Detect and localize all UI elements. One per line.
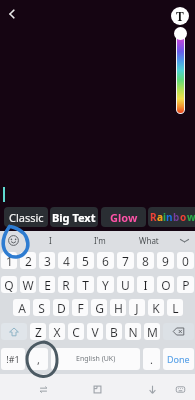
staticText: !#1	[6, 353, 20, 365]
button[interactable]: C	[68, 323, 84, 340]
staticText: B	[110, 324, 118, 340]
staticText: 9	[162, 253, 169, 269]
staticText: R	[62, 277, 70, 293]
staticText: P	[182, 277, 190, 293]
button[interactable]: 2	[20, 252, 36, 269]
button[interactable]: What	[124, 231, 173, 250]
staticText: W	[22, 277, 34, 293]
button[interactable]: Done	[163, 348, 194, 370]
button[interactable]: T	[77, 276, 94, 293]
staticText: E	[44, 277, 51, 293]
staticText: C	[72, 324, 80, 340]
button[interactable]: Backspace	[163, 323, 194, 340]
button[interactable]: 5	[77, 252, 94, 269]
button[interactable]: Keyboard	[167, 374, 193, 400]
button[interactable]: V	[87, 323, 103, 340]
staticText: b	[173, 210, 180, 224]
button[interactable]: S	[33, 299, 50, 316]
staticText: I	[49, 235, 52, 246]
button[interactable]: I'm	[75, 231, 124, 250]
button[interactable]: Colour slider	[177, 34, 184, 113]
staticText: 1	[6, 253, 13, 269]
button[interactable]: I	[137, 276, 154, 293]
staticText: I'm	[94, 235, 106, 246]
button[interactable]: J	[129, 299, 145, 316]
button[interactable]: P	[177, 276, 194, 293]
button[interactable]: Text style	[171, 7, 189, 25]
button[interactable]: H	[110, 299, 126, 316]
staticText: T	[82, 277, 89, 293]
button[interactable]: Q	[1, 276, 17, 293]
button[interactable]: 6	[97, 252, 114, 269]
button[interactable]: O	[157, 276, 174, 293]
button[interactable]: 4	[58, 252, 74, 269]
staticText: K	[152, 300, 160, 316]
button[interactable]: Z	[30, 323, 46, 340]
button[interactable]: Big Text	[50, 207, 98, 227]
staticText: 5	[82, 253, 89, 269]
staticText: R	[150, 210, 157, 224]
button[interactable]: !#1	[1, 348, 25, 370]
staticText: M	[147, 324, 158, 340]
staticText: Big Text	[52, 210, 96, 225]
staticText: Q	[4, 277, 14, 293]
button[interactable]: Recents	[84, 374, 110, 400]
staticText: N	[128, 324, 138, 340]
button[interactable]: 1	[1, 252, 17, 269]
staticText: 7	[122, 253, 129, 269]
button[interactable]: G	[91, 299, 107, 316]
button[interactable]: M	[144, 323, 160, 340]
staticText: I	[143, 277, 148, 293]
button[interactable]: E	[39, 276, 55, 293]
button[interactable]: A	[13, 299, 30, 316]
button[interactable]: 8	[137, 252, 154, 269]
button[interactable]: Back	[2, 4, 22, 24]
button[interactable]: R	[148, 207, 195, 227]
staticText: A	[18, 300, 26, 316]
button[interactable]: Glow	[101, 207, 146, 227]
button[interactable]: Hide keyboard	[139, 374, 165, 400]
button[interactable]: K	[148, 299, 164, 316]
staticText: L	[172, 300, 179, 316]
staticText: V	[91, 324, 99, 340]
button[interactable]: X	[49, 323, 65, 340]
staticText: 4	[63, 253, 70, 269]
button[interactable]: N	[125, 323, 141, 340]
staticText: What	[139, 235, 159, 246]
button[interactable]: Switch input method	[30, 374, 56, 400]
staticText: 2	[25, 253, 32, 269]
button[interactable]: I	[26, 231, 75, 250]
button[interactable]: L	[167, 299, 183, 316]
button[interactable]: Y	[97, 276, 114, 293]
staticText: w	[187, 210, 195, 224]
button[interactable]: U	[117, 276, 134, 293]
button[interactable]: 9	[157, 252, 174, 269]
button[interactable]: W	[20, 276, 36, 293]
button[interactable]: Emoji	[0, 231, 26, 250]
staticText: a	[157, 210, 163, 224]
staticText: .	[150, 352, 153, 367]
button[interactable]: B	[106, 323, 122, 340]
button[interactable]: F	[72, 299, 88, 316]
staticText: U	[121, 277, 130, 293]
staticText: X	[53, 324, 61, 340]
staticText: T	[176, 8, 184, 24]
button[interactable]: 3	[39, 252, 55, 269]
staticText: Z	[35, 324, 42, 340]
button[interactable]: 0	[177, 252, 194, 269]
staticText: i	[163, 210, 166, 224]
button[interactable]: R	[58, 276, 74, 293]
staticText: 3	[44, 253, 51, 269]
button[interactable]: Shift	[1, 323, 27, 340]
staticText: Glow	[110, 210, 138, 225]
staticText: G	[95, 300, 104, 316]
button[interactable]: .	[143, 348, 160, 370]
button[interactable]: English (UK)	[51, 348, 140, 370]
button[interactable]: 7	[117, 252, 134, 269]
button[interactable]: D	[53, 299, 69, 316]
button[interactable]: More suggestions	[173, 231, 195, 250]
button[interactable]: Classic	[4, 207, 48, 227]
staticText: 8	[142, 253, 149, 269]
button[interactable]: Colour	[174, 27, 187, 40]
button[interactable]: ,	[28, 348, 48, 370]
